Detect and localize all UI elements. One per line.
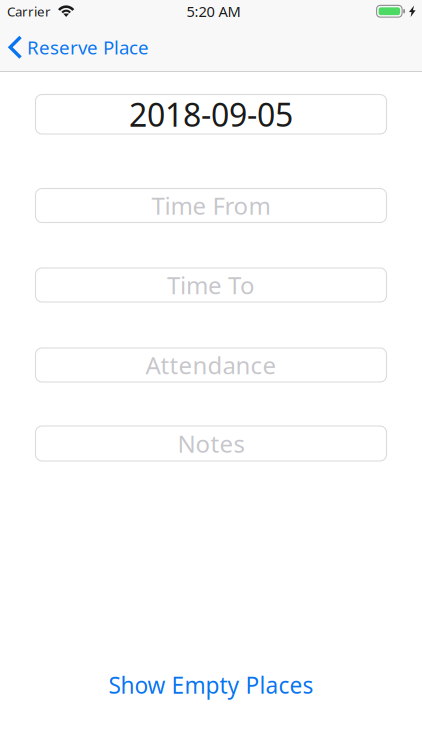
staticText: Notes <box>177 428 244 459</box>
staticText: Show Empty Places <box>108 670 313 700</box>
staticText: Time To <box>167 269 255 301</box>
button[interactable]: Show Empty Places <box>0 663 422 707</box>
staticText: Carrier <box>7 2 51 20</box>
button[interactable]: Reserve Place <box>0 22 159 72</box>
button[interactable]: Time To <box>35 268 386 302</box>
button[interactable]: Attendance <box>35 348 386 382</box>
staticText: Time From <box>151 190 270 221</box>
staticText: Attendance <box>145 349 276 381</box>
staticText: 5:20 AM <box>186 1 240 21</box>
staticText: 2018-09-05 <box>129 93 293 135</box>
button[interactable]: Notes <box>35 426 386 461</box>
button[interactable]: Time From <box>35 188 386 222</box>
button[interactable]: 2018-09-05 <box>35 94 386 134</box>
staticText: Reserve Place <box>27 35 149 60</box>
